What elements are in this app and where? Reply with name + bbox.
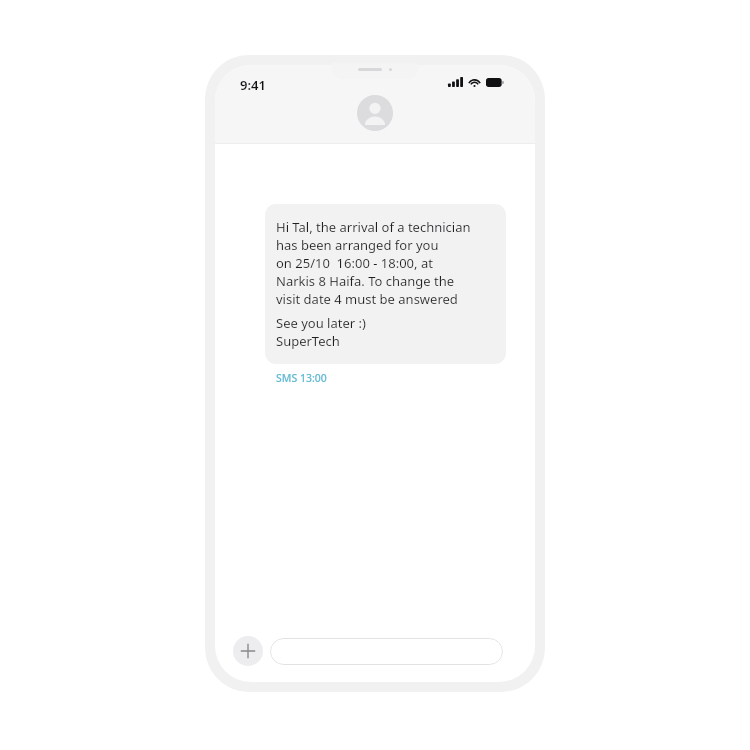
staticText: See you later :) SuperTech (276, 314, 366, 350)
button[interactable]: Contact profile (357, 95, 393, 131)
button[interactable]: Message input field (270, 638, 503, 665)
staticText: Hi Tal, the arrival of a technician has … (276, 218, 471, 308)
staticText: 9:41 (240, 76, 266, 94)
staticText: SMS 13:00 (276, 371, 327, 385)
button[interactable]: Hi Tal, the arrival of a technician has … (265, 204, 506, 364)
button[interactable]: Add attachment (233, 636, 263, 666)
